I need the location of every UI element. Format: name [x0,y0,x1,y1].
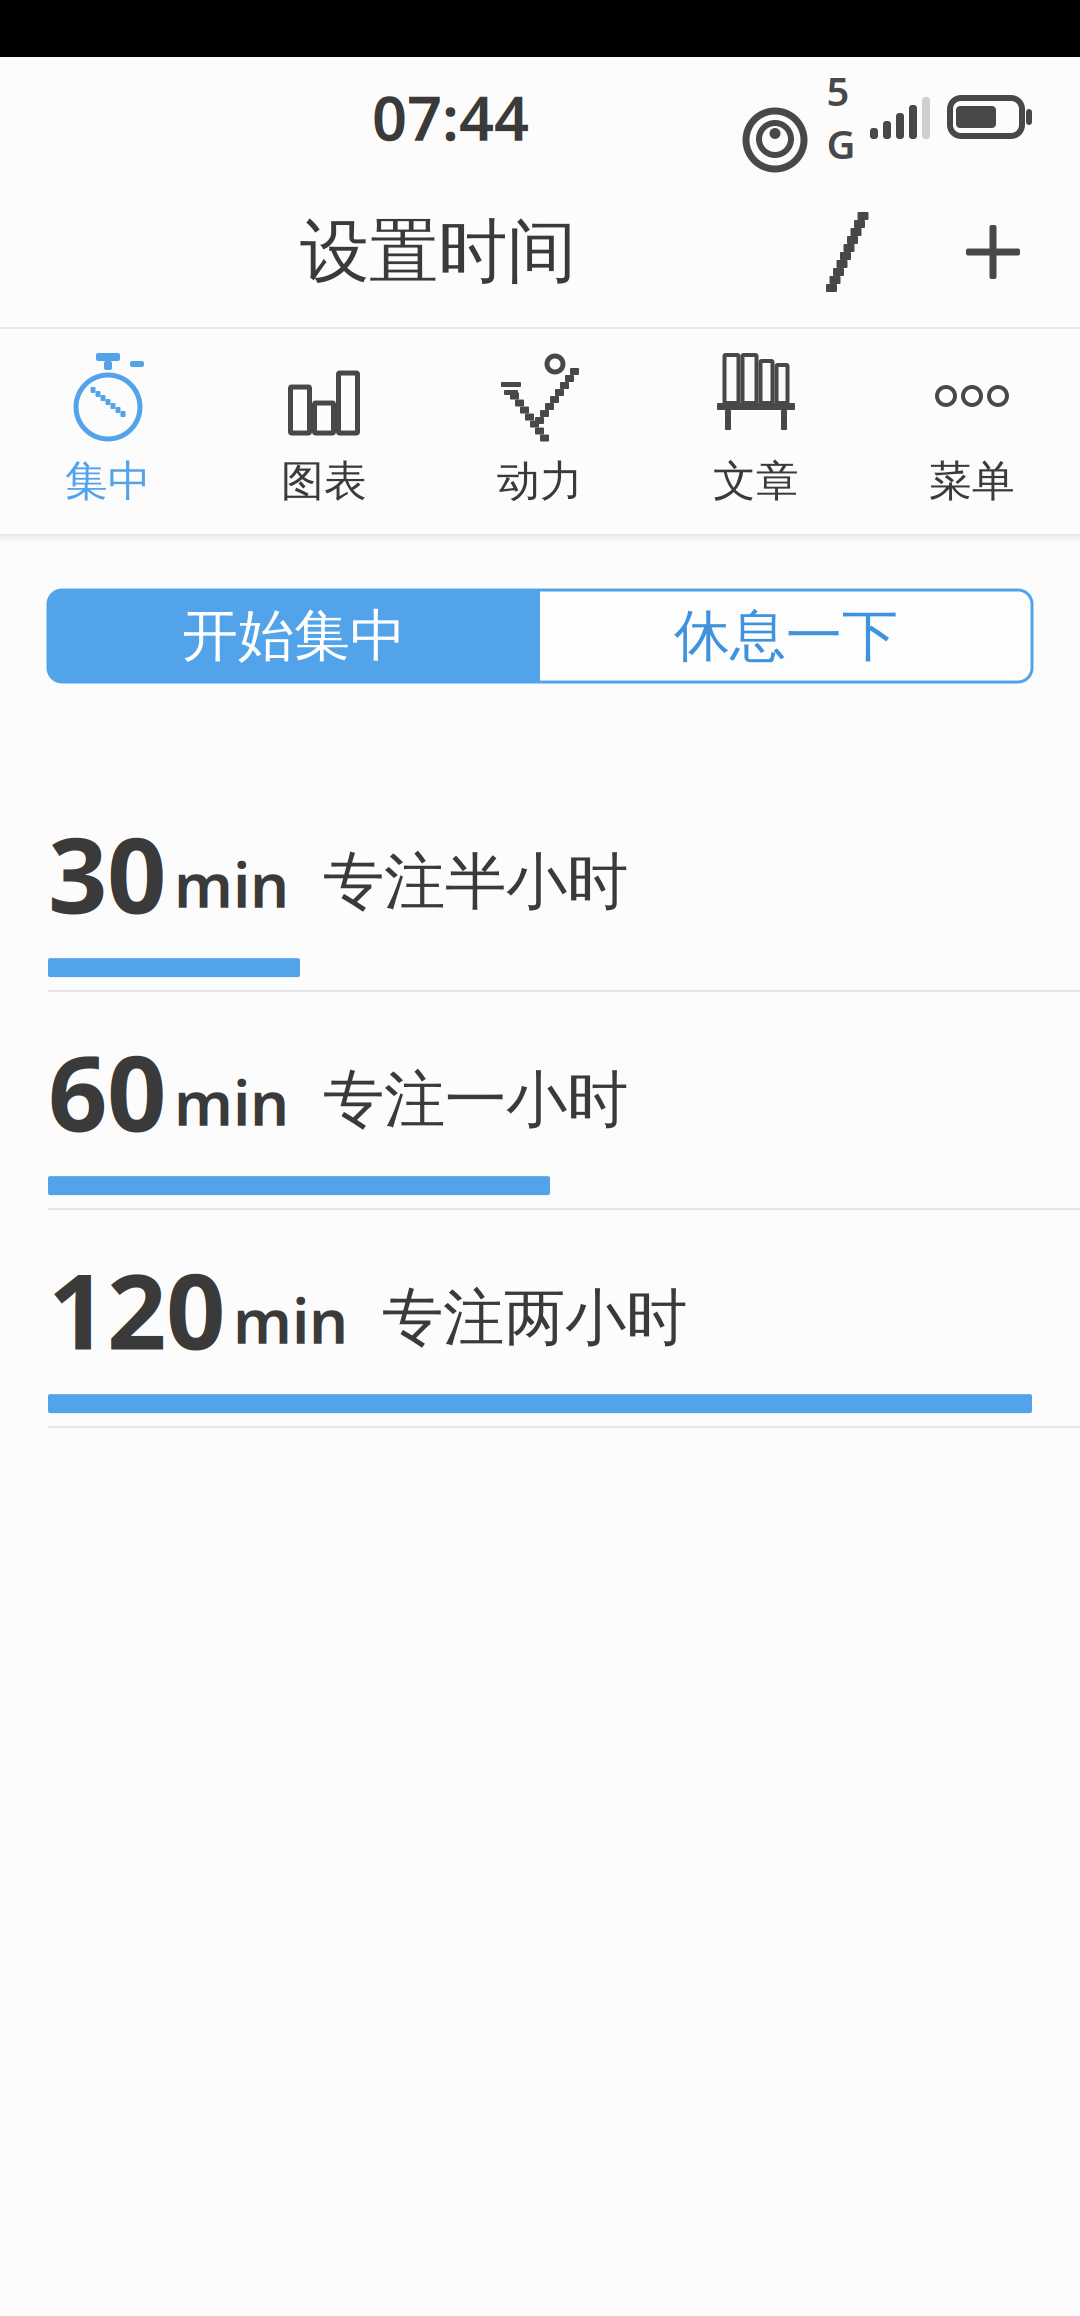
staticText: 30 [48,804,166,942]
staticText: 集中 [65,455,151,507]
staticText: 设置时间 [300,209,576,295]
staticText: 图表 [281,455,367,507]
button[interactable]: 添加 [928,177,1058,327]
staticText: 60 [48,1022,166,1160]
button[interactable]: 菜单 [864,329,1080,534]
staticText: min [233,1279,348,1361]
button[interactable]: 休息一下 [540,590,1032,682]
staticText: 开始集中 [182,602,406,670]
button[interactable]: 集中 [0,329,216,534]
staticText: 120 [48,1240,225,1378]
button[interactable]: 60 [0,992,1080,1208]
staticText: min [174,843,289,925]
staticText: 专注两小时 [382,1280,687,1356]
staticText: 专注一小时 [323,1062,628,1138]
button[interactable]: 文章 [648,329,864,534]
staticText: 07:44 [372,76,529,158]
staticText: 动力 [497,455,583,507]
staticText: 文章 [713,455,799,507]
staticText: 专注半小时 [323,844,628,920]
button[interactable]: 30 [0,774,1080,990]
button[interactable]: 图表 [216,329,432,534]
button[interactable]: 120 [0,1210,1080,1426]
staticText: min [174,1061,289,1143]
staticText: 休息一下 [674,602,898,670]
button[interactable]: 动力 [432,329,648,534]
button[interactable]: 编辑 [798,177,928,327]
staticText: 菜单 [929,455,1015,507]
button[interactable]: 开始集中 [48,590,540,682]
staticText: 5G [826,64,855,170]
